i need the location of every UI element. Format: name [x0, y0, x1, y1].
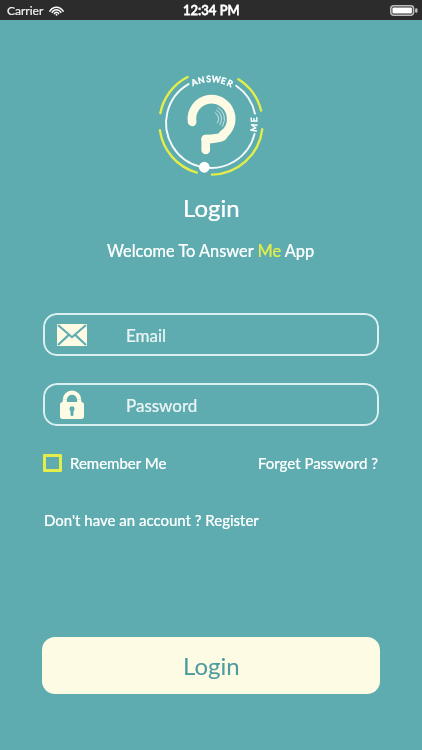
button[interactable]: Email — [43, 313, 379, 356]
other: Email — [57, 324, 87, 346]
staticText: Login — [183, 193, 240, 222]
button[interactable]: Password — [43, 383, 379, 426]
staticText: Email — [126, 325, 167, 345]
button[interactable]: Login — [42, 637, 380, 694]
button[interactable]: Forget Password ? — [258, 454, 378, 472]
other: Password — [60, 390, 84, 419]
button[interactable]: Don't have an account ? Register — [44, 511, 259, 529]
button[interactable]: Remember Me — [43, 454, 167, 472]
staticText: 12:34 PM — [183, 2, 240, 18]
staticText: Welcome To Answer Me App — [107, 241, 315, 261]
staticText: Password — [126, 395, 198, 415]
staticText: Carrier — [7, 3, 44, 17]
staticText: Remember Me — [70, 454, 167, 472]
staticText: Login — [183, 651, 240, 680]
